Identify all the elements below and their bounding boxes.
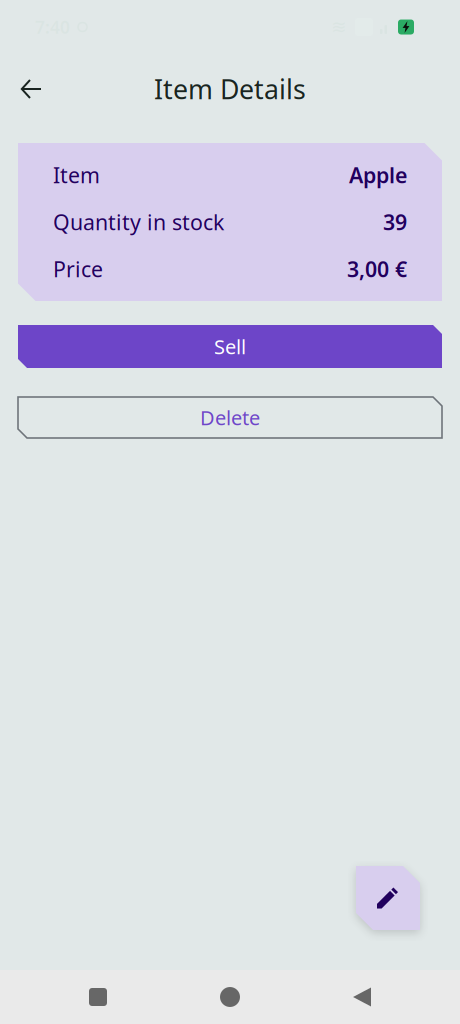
staticText: Quantity in stock: [53, 208, 224, 236]
button[interactable]: Back: [296, 970, 428, 1024]
staticText: Price: [53, 255, 103, 283]
button[interactable]: Sell: [18, 325, 442, 368]
staticText: Sell: [214, 333, 246, 360]
staticText: Apple: [349, 161, 407, 189]
button[interactable]: Delete: [18, 397, 442, 438]
staticText: Delete: [200, 404, 260, 431]
button[interactable]: Back: [0, 61, 62, 117]
button[interactable]: Edit: [356, 866, 420, 930]
button[interactable]: Recent apps: [32, 970, 164, 1024]
staticText: Item Details: [154, 71, 306, 107]
staticText: Item: [53, 161, 100, 189]
staticText: 39: [383, 208, 407, 236]
staticText: 3,00 €: [347, 255, 407, 283]
button[interactable]: Home: [164, 970, 296, 1024]
